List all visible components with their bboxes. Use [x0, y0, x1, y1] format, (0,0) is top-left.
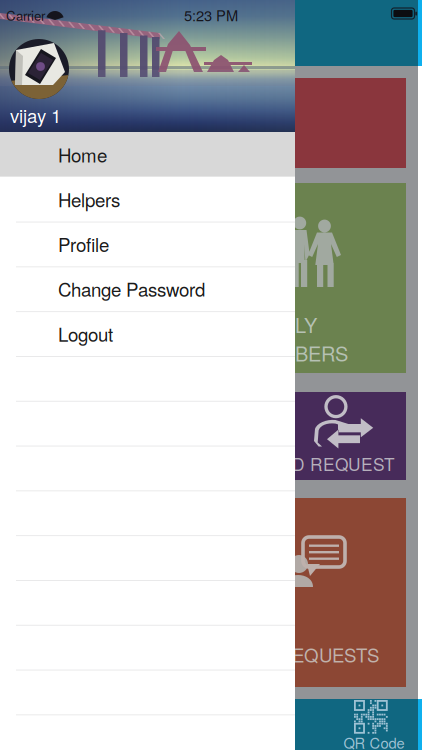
- staticText: REQUESTS: [279, 641, 379, 668]
- button[interactable]: Profile: [0, 222, 295, 266]
- button[interactable]: FAMILY MEMBERS: [12, 183, 406, 373]
- button[interactable]: QR Code: [340, 699, 412, 750]
- staticText: Profile: [58, 231, 109, 257]
- button[interactable]: Logout: [0, 311, 295, 356]
- button[interactable]: Change Password: [0, 266, 295, 311]
- staticText: FAMILY MEMBERS: [248, 310, 348, 367]
- staticText: 5:23 PM: [184, 4, 238, 25]
- button[interactable]: [12, 78, 406, 168]
- button[interactable]: REQUESTS: [12, 498, 406, 687]
- staticText: vijay 1: [10, 102, 61, 128]
- staticText: SEND REQUEST: [255, 451, 395, 476]
- staticText: Carrier: [6, 5, 45, 25]
- button[interactable]: SEND REQUEST: [12, 392, 406, 480]
- button[interactable]: Home: [0, 132, 295, 177]
- staticText: Helpers: [58, 186, 120, 212]
- staticText: Logout: [58, 320, 113, 347]
- button[interactable]: Helpers: [0, 177, 295, 222]
- staticText: Home: [58, 141, 107, 168]
- staticText: QR Code: [343, 732, 404, 750]
- staticText: Change Password: [58, 275, 205, 302]
